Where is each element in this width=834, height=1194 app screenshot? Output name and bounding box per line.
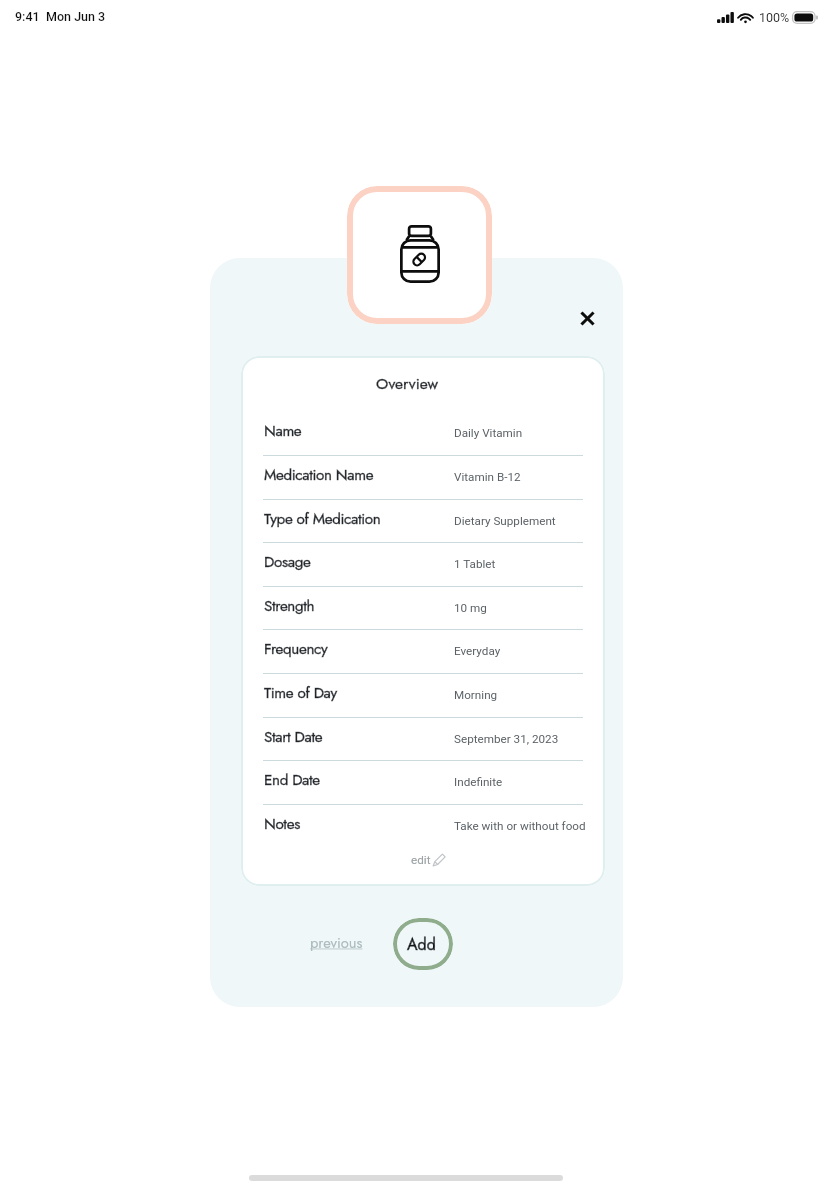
button[interactable]: Type of Medication	[241, 499, 605, 543]
staticText: Dosage	[264, 551, 311, 573]
staticText: 1 Tablet	[454, 557, 496, 571]
staticText: 100%	[759, 10, 790, 25]
staticText: Vitamin B-12	[454, 470, 521, 484]
staticText: Everyday	[454, 644, 501, 658]
staticText: Notes	[264, 813, 300, 835]
staticText: Mon Jun 3	[46, 9, 106, 24]
button[interactable]: Medication Name	[241, 455, 605, 499]
staticText: Overview	[376, 372, 438, 394]
staticText: Strength	[264, 595, 315, 617]
staticText: Take with or without food	[454, 819, 586, 833]
staticText: Time of Day	[264, 682, 337, 704]
staticText: Frequency	[264, 638, 328, 660]
staticText: Start Date	[264, 726, 323, 748]
button[interactable]: Strength	[241, 586, 605, 630]
staticText: End Date	[264, 769, 320, 791]
staticText: Strength	[264, 595, 315, 617]
button[interactable]: Frequency	[241, 629, 605, 673]
staticText: Type of Medication	[264, 508, 381, 530]
staticText: Dietary Supplement	[454, 514, 556, 528]
button[interactable]: Dosage	[241, 542, 605, 586]
staticText: End Date	[264, 769, 320, 791]
staticText: September 31, 2023	[454, 732, 559, 746]
button[interactable]: Time of Day	[241, 673, 605, 717]
button[interactable]: previous	[304, 927, 369, 958]
staticText: Add	[407, 933, 436, 956]
button[interactable]: End Date	[241, 760, 605, 804]
staticText: Morning	[454, 688, 498, 702]
button[interactable]: edit	[406, 850, 451, 870]
staticText: Start Date	[264, 726, 323, 748]
button[interactable]: Close	[567, 298, 607, 338]
staticText: Type of Medication	[264, 508, 381, 530]
button[interactable]: Name	[241, 411, 605, 455]
staticText: edit	[411, 853, 431, 867]
staticText: Dosage	[264, 551, 311, 573]
staticText: Frequency	[264, 638, 328, 660]
staticText: Medication Name	[264, 464, 374, 486]
staticText: Time of Day	[264, 682, 337, 704]
button[interactable]: Notes	[241, 804, 605, 848]
staticText: Name	[264, 420, 302, 442]
button[interactable]: Start Date	[241, 717, 605, 761]
other: Medication	[347, 186, 492, 324]
staticText: Add	[407, 933, 436, 956]
staticText: Overview	[376, 372, 438, 394]
staticText: 10 mg	[454, 601, 487, 615]
staticText: Medication Name	[264, 464, 374, 486]
staticText: Indefinite	[454, 775, 503, 789]
button[interactable]: Add	[393, 918, 453, 970]
staticText: previous	[310, 932, 363, 953]
staticText: Name	[264, 420, 302, 442]
staticText: Notes	[264, 813, 300, 835]
staticText: Daily Vitamin	[454, 426, 523, 440]
staticText: 9:41	[15, 9, 40, 24]
